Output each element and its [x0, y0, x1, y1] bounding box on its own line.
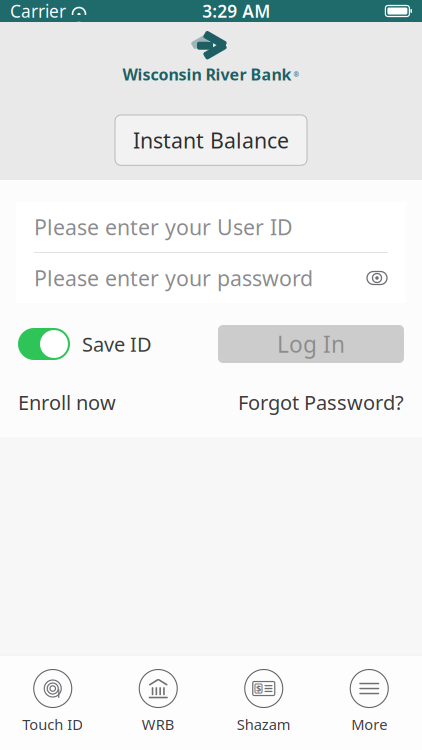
staticText: WRB [142, 714, 175, 734]
staticText: ® [293, 70, 299, 79]
button[interactable]: Save ID [18, 328, 152, 360]
staticText: Wisconsin River Bank [122, 64, 291, 85]
staticText: Forgot Password? [238, 389, 404, 416]
button[interactable]: More [316, 663, 422, 740]
staticText: Please enter your User ID [34, 213, 293, 241]
button[interactable]: Touch ID [0, 663, 105, 740]
button[interactable]: Log In [218, 325, 404, 363]
staticText: Carrier [10, 0, 66, 22]
staticText: 3:29 AM [202, 0, 270, 22]
button[interactable]: Forgot Password? [238, 389, 404, 416]
staticText: Please enter your password [34, 264, 313, 292]
button[interactable]: Please enter your password [16, 253, 406, 303]
button[interactable]: Instant Balance [115, 115, 307, 165]
button[interactable]: WRB [105, 663, 211, 740]
staticText: Touch ID [22, 714, 83, 734]
staticText: Log In [277, 329, 345, 359]
button[interactable]: Please enter your User ID [16, 202, 406, 252]
staticText: Instant Balance [133, 126, 289, 154]
staticText: More [351, 714, 387, 734]
staticText: Shazam [237, 714, 291, 734]
staticText: $ [256, 682, 261, 695]
button[interactable]: $ [211, 663, 316, 740]
button[interactable]: Enroll now [18, 389, 116, 416]
staticText: Save ID [82, 331, 152, 357]
staticText: Enroll now [18, 389, 116, 416]
